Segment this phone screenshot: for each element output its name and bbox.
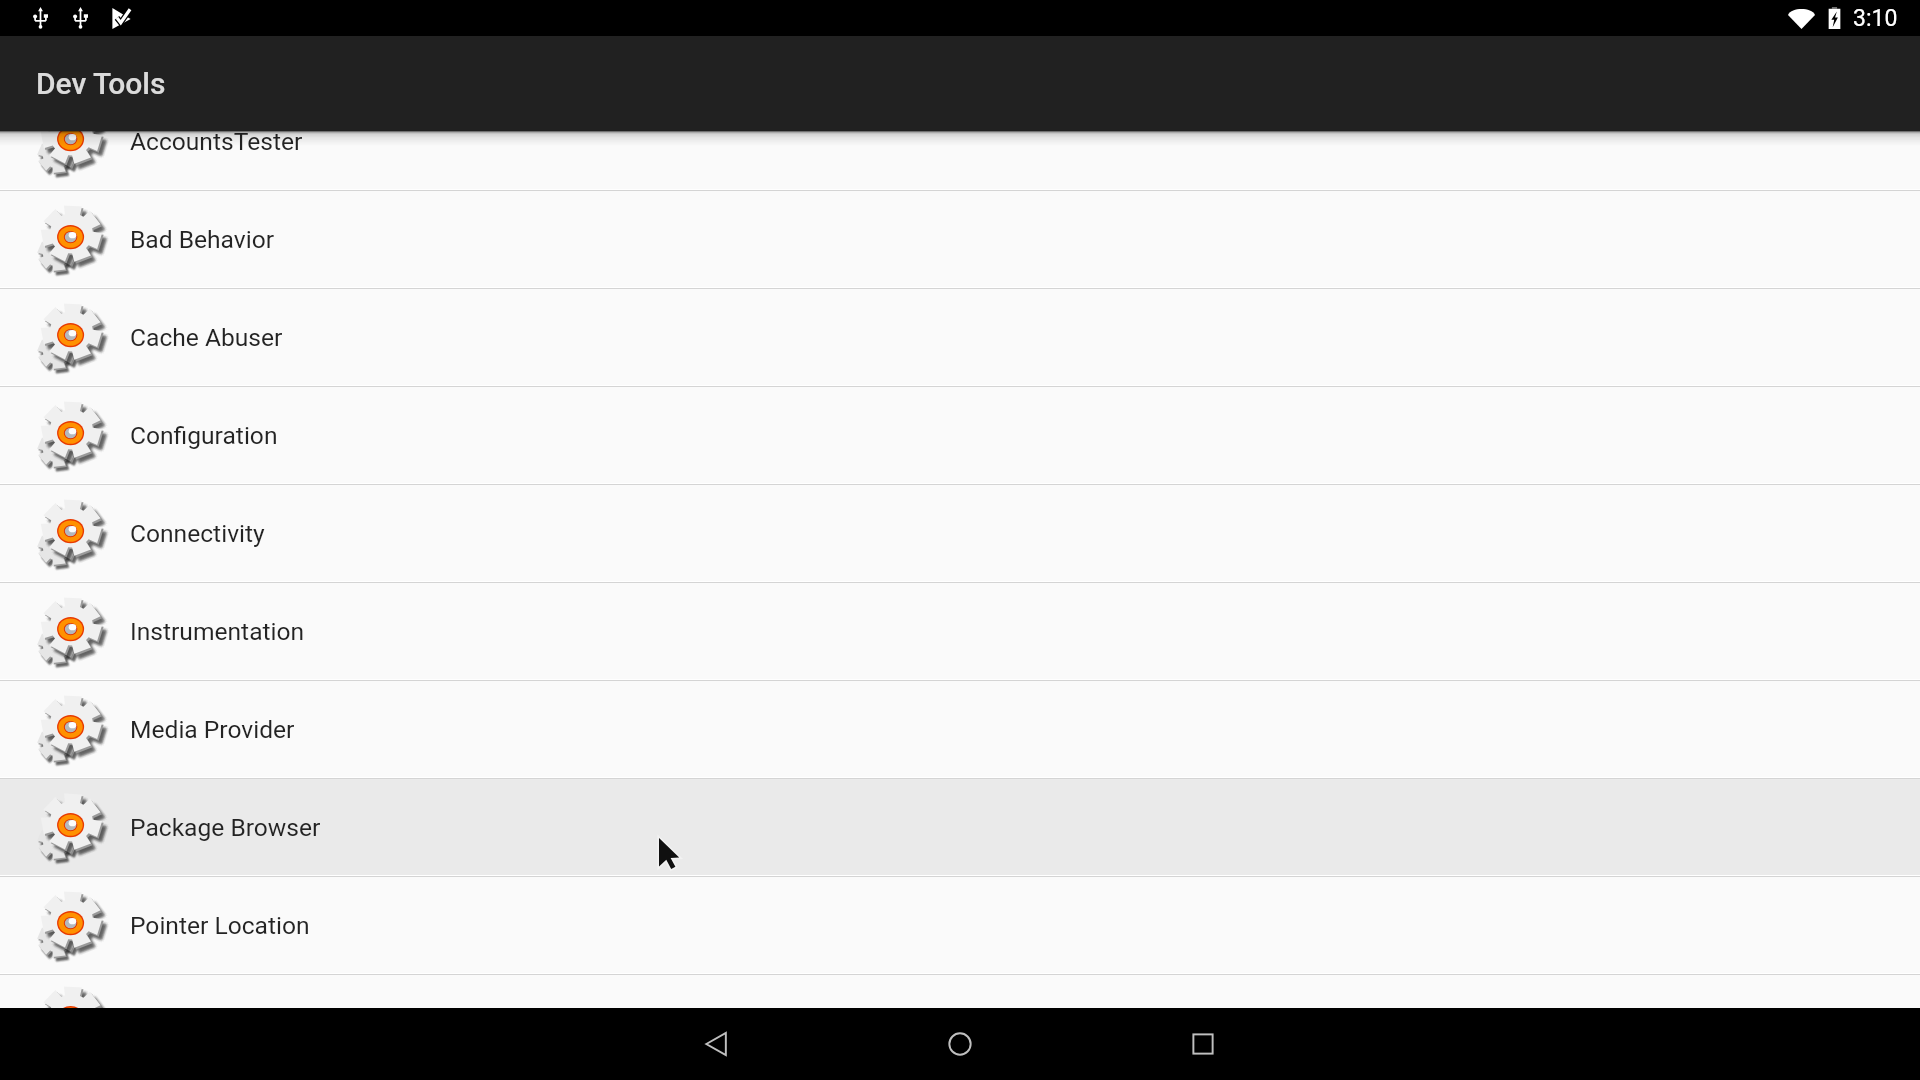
button[interactable]: Package Browser xyxy=(0,779,1920,875)
button[interactable]: Power Control xyxy=(0,975,1920,1008)
staticText: Bad Behavior xyxy=(130,225,275,254)
button[interactable]: Instrumentation xyxy=(0,583,1920,679)
button[interactable]: Configuration xyxy=(0,387,1920,483)
staticText: Cache Abuser xyxy=(130,323,283,352)
button[interactable]: Pointer Location xyxy=(0,877,1920,973)
button[interactable]: Home xyxy=(924,1008,996,1080)
staticText: Connectivity xyxy=(130,519,265,548)
staticText: Pointer Location xyxy=(130,911,310,940)
staticText: 3:10 xyxy=(1853,5,1898,32)
button[interactable]: AccountsTester xyxy=(0,93,1920,189)
button[interactable]: Connectivity xyxy=(0,485,1920,581)
button[interactable]: Cache Abuser xyxy=(0,289,1920,385)
staticText: Media Provider xyxy=(130,715,295,744)
button[interactable]: Bad Behavior xyxy=(0,191,1920,287)
button[interactable]: Recents xyxy=(1167,1008,1239,1080)
staticText: Instrumentation xyxy=(130,617,305,646)
staticText: Dev Tools xyxy=(36,66,166,101)
staticText: Configuration xyxy=(130,421,278,450)
button[interactable]: Media Provider xyxy=(0,681,1920,777)
button[interactable]: Back xyxy=(681,1008,753,1080)
staticText: Package Browser xyxy=(130,813,321,842)
staticText: AccountsTester xyxy=(130,127,303,156)
